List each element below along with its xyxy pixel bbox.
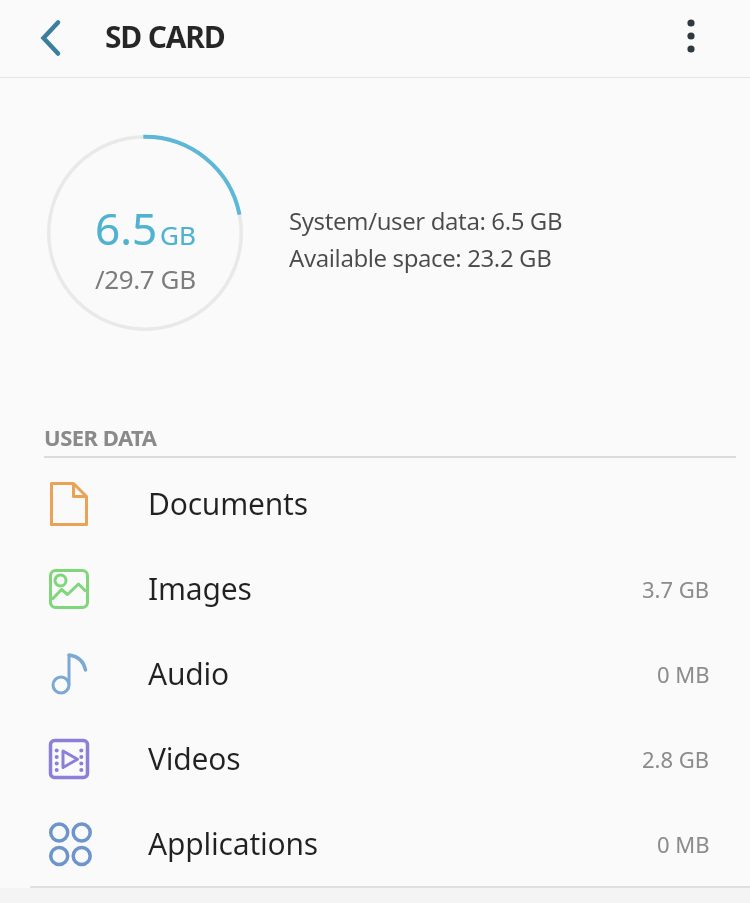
staticText: Applications	[148, 823, 319, 864]
staticText: Documents	[148, 483, 308, 524]
button[interactable]	[0, 0, 90, 77]
staticText: SD CARD	[105, 16, 225, 57]
staticText: 0 MB	[657, 659, 710, 689]
button[interactable]: Audio	[0, 631, 750, 716]
staticText: 0 MB	[657, 829, 710, 859]
staticText: System/user data: 6.5 GB	[289, 204, 563, 237]
staticText: /29.7 GB	[95, 261, 196, 296]
button[interactable]: Documents	[0, 461, 750, 546]
staticText: Images	[148, 568, 252, 609]
staticText: GB	[160, 217, 196, 252]
button[interactable]: Videos	[0, 716, 750, 801]
staticText: Videos	[148, 738, 241, 779]
staticText: USER DATA	[44, 422, 157, 452]
button[interactable]: Images	[0, 546, 750, 631]
staticText: 2.8 GB	[642, 744, 710, 774]
staticText: Available space: 23.2 GB	[289, 241, 552, 274]
staticText: 6.5	[95, 198, 158, 258]
staticText: 3.7 GB	[642, 574, 710, 604]
button[interactable]: Applications	[0, 801, 750, 886]
staticText: Audio	[148, 653, 230, 694]
button[interactable]	[661, 0, 721, 77]
